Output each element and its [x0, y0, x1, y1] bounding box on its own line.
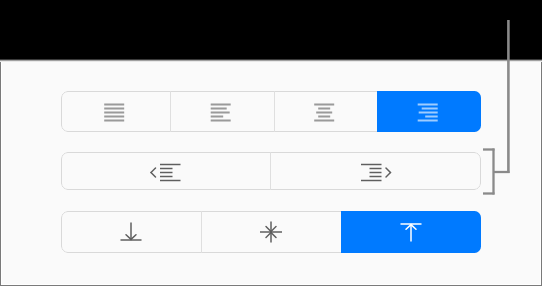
button[interactable]: Align top [341, 211, 481, 253]
button[interactable]: Align middle [201, 211, 341, 253]
button[interactable]: Increase indent [270, 152, 481, 190]
button[interactable]: Align bottom [61, 211, 201, 253]
button[interactable]: Align right [377, 91, 481, 132]
button[interactable]: Align left [170, 91, 274, 132]
button[interactable]: Align center [274, 91, 377, 132]
button[interactable]: Justify [61, 91, 170, 132]
button[interactable]: Decrease indent [61, 152, 270, 190]
